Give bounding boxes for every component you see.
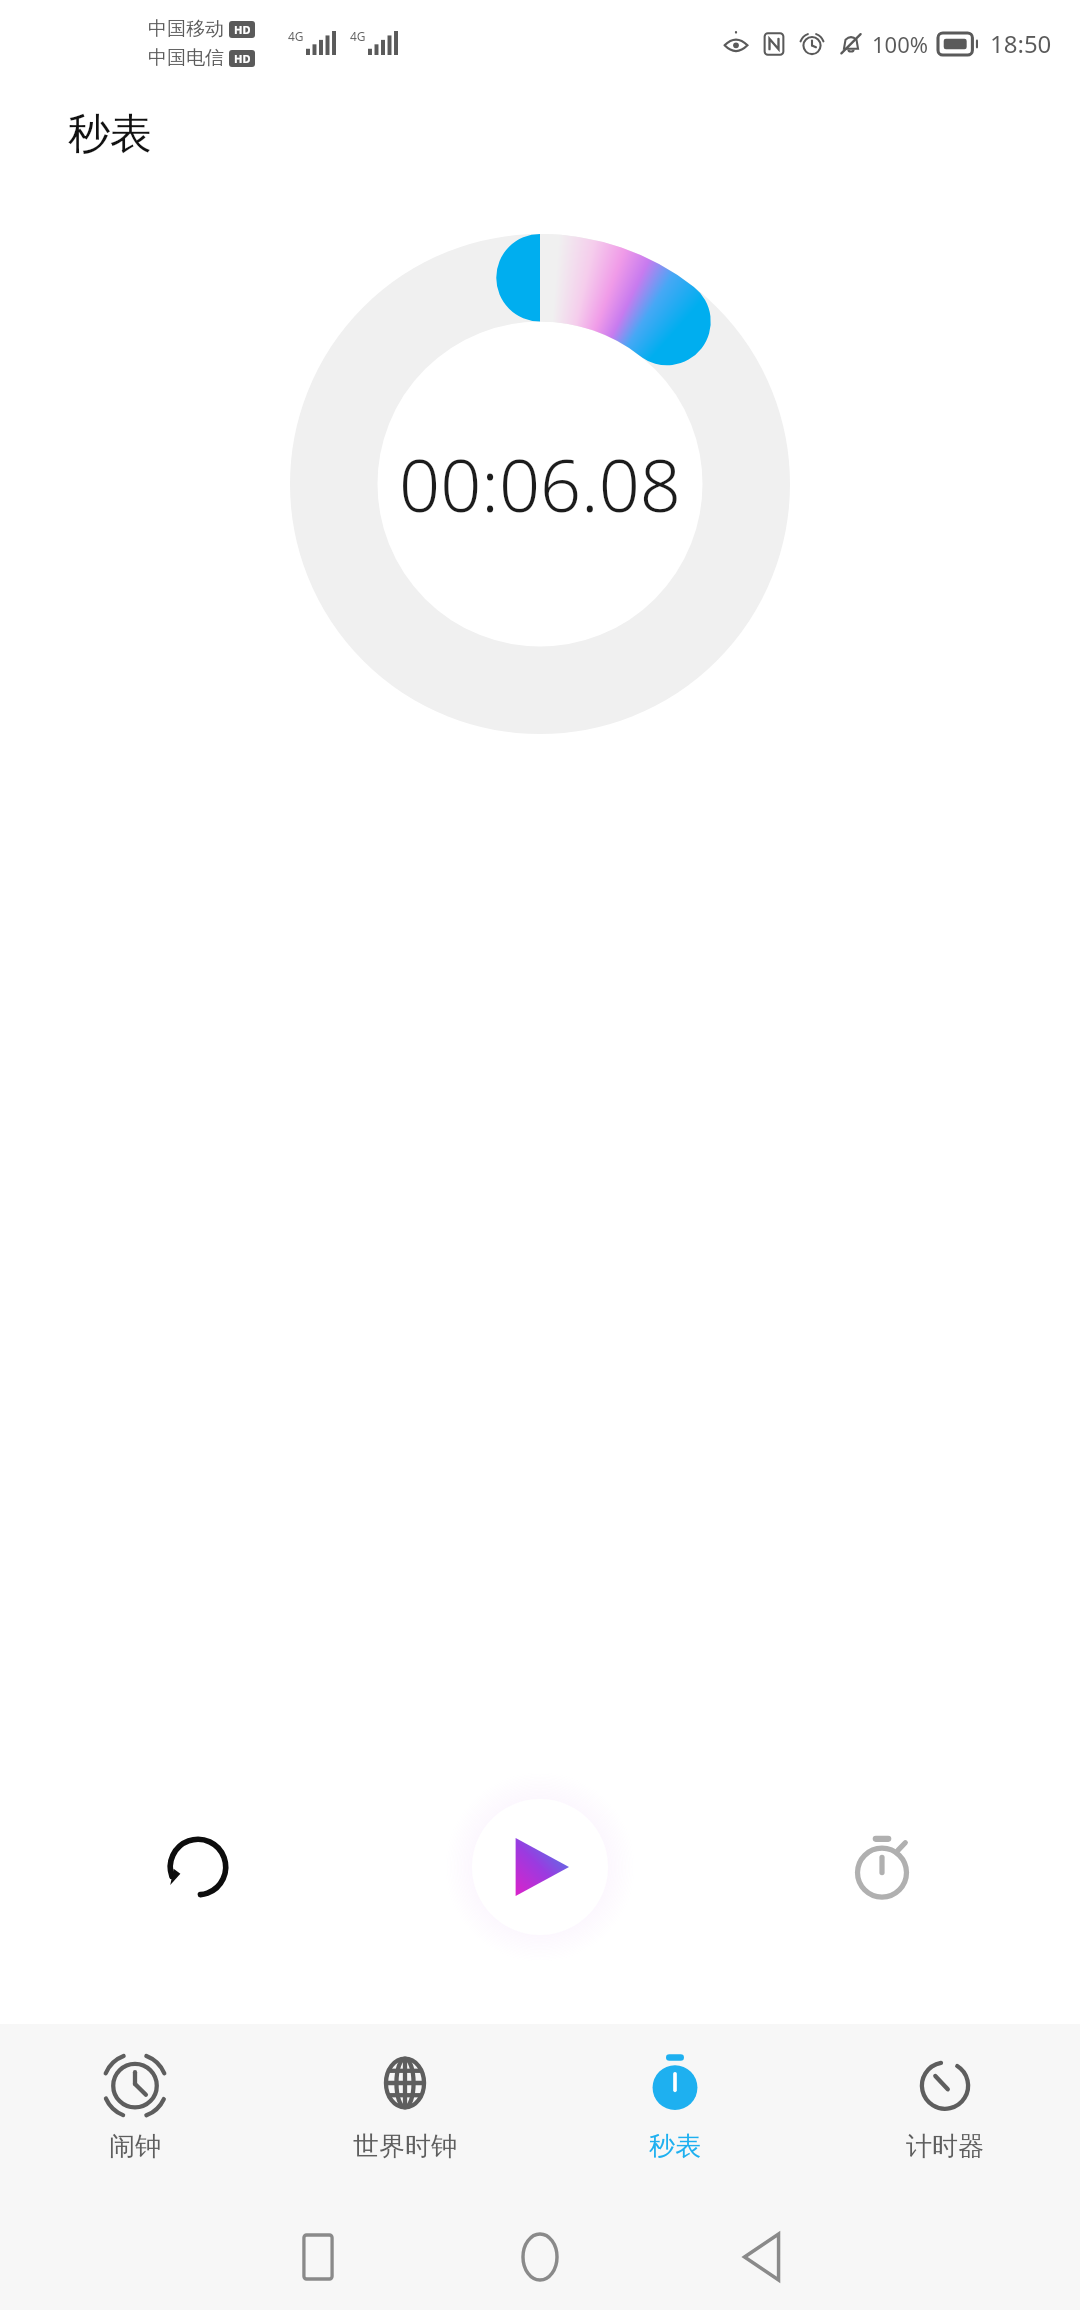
button[interactable]: 世界时钟 xyxy=(270,2024,540,2163)
button[interactable]: 秒表 xyxy=(540,2024,810,2163)
staticText: 00:06.08 xyxy=(399,435,681,533)
button[interactable]: Recents xyxy=(263,2204,373,2310)
staticText: 秒表 xyxy=(68,108,152,161)
staticText: 计时器 xyxy=(906,2130,984,2163)
staticText: 18:50 xyxy=(990,27,1052,60)
staticText: 4G xyxy=(288,28,304,44)
staticText: 100% xyxy=(872,29,929,59)
button[interactable]: Reset xyxy=(146,1815,250,1919)
button[interactable]: Lap xyxy=(830,1815,934,1919)
staticText: 闹钟 xyxy=(109,2130,161,2163)
button[interactable]: Home xyxy=(485,2204,595,2310)
button[interactable]: Back xyxy=(707,2204,817,2310)
staticText: 世界时钟 xyxy=(353,2130,457,2163)
staticText: HD xyxy=(234,51,251,66)
staticText: 4G xyxy=(350,28,366,44)
button[interactable]: 计时器 xyxy=(810,2024,1080,2163)
button[interactable]: 闹钟 xyxy=(0,2024,270,2163)
button[interactable]: Start xyxy=(472,1799,608,1935)
staticText: 中国移动 xyxy=(148,17,224,41)
staticText: 秒表 xyxy=(649,2130,701,2163)
staticText: 中国电信 xyxy=(148,46,224,70)
staticText: HD xyxy=(234,22,251,37)
